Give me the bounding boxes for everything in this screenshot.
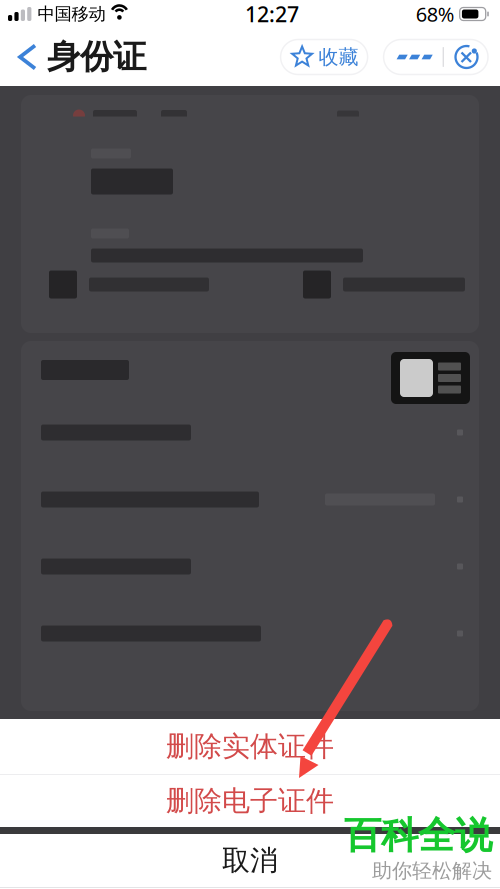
staticText: 12:27 bbox=[245, 0, 299, 28]
staticText: 删除实体证件 bbox=[166, 729, 334, 764]
staticText: 删除电子证件 bbox=[166, 784, 334, 818]
staticText: 收藏 bbox=[319, 45, 359, 69]
button[interactable]: 取消 bbox=[0, 834, 500, 887]
staticText: 百科全说 bbox=[344, 813, 492, 858]
button[interactable]: 删除电子证件 bbox=[0, 775, 500, 827]
staticText: 中国移动 bbox=[37, 3, 105, 25]
staticText: 68% bbox=[416, 1, 455, 27]
staticText: 助你轻松解决 bbox=[372, 858, 492, 883]
button[interactable]: 收藏 bbox=[281, 39, 368, 74]
button[interactable]: Close bbox=[368, 39, 488, 74]
staticText: 身份证 bbox=[47, 36, 146, 77]
button[interactable]: Back bbox=[0, 29, 47, 84]
staticText: 取消 bbox=[222, 843, 278, 878]
button[interactable]: 删除实体证件 bbox=[0, 719, 500, 774]
